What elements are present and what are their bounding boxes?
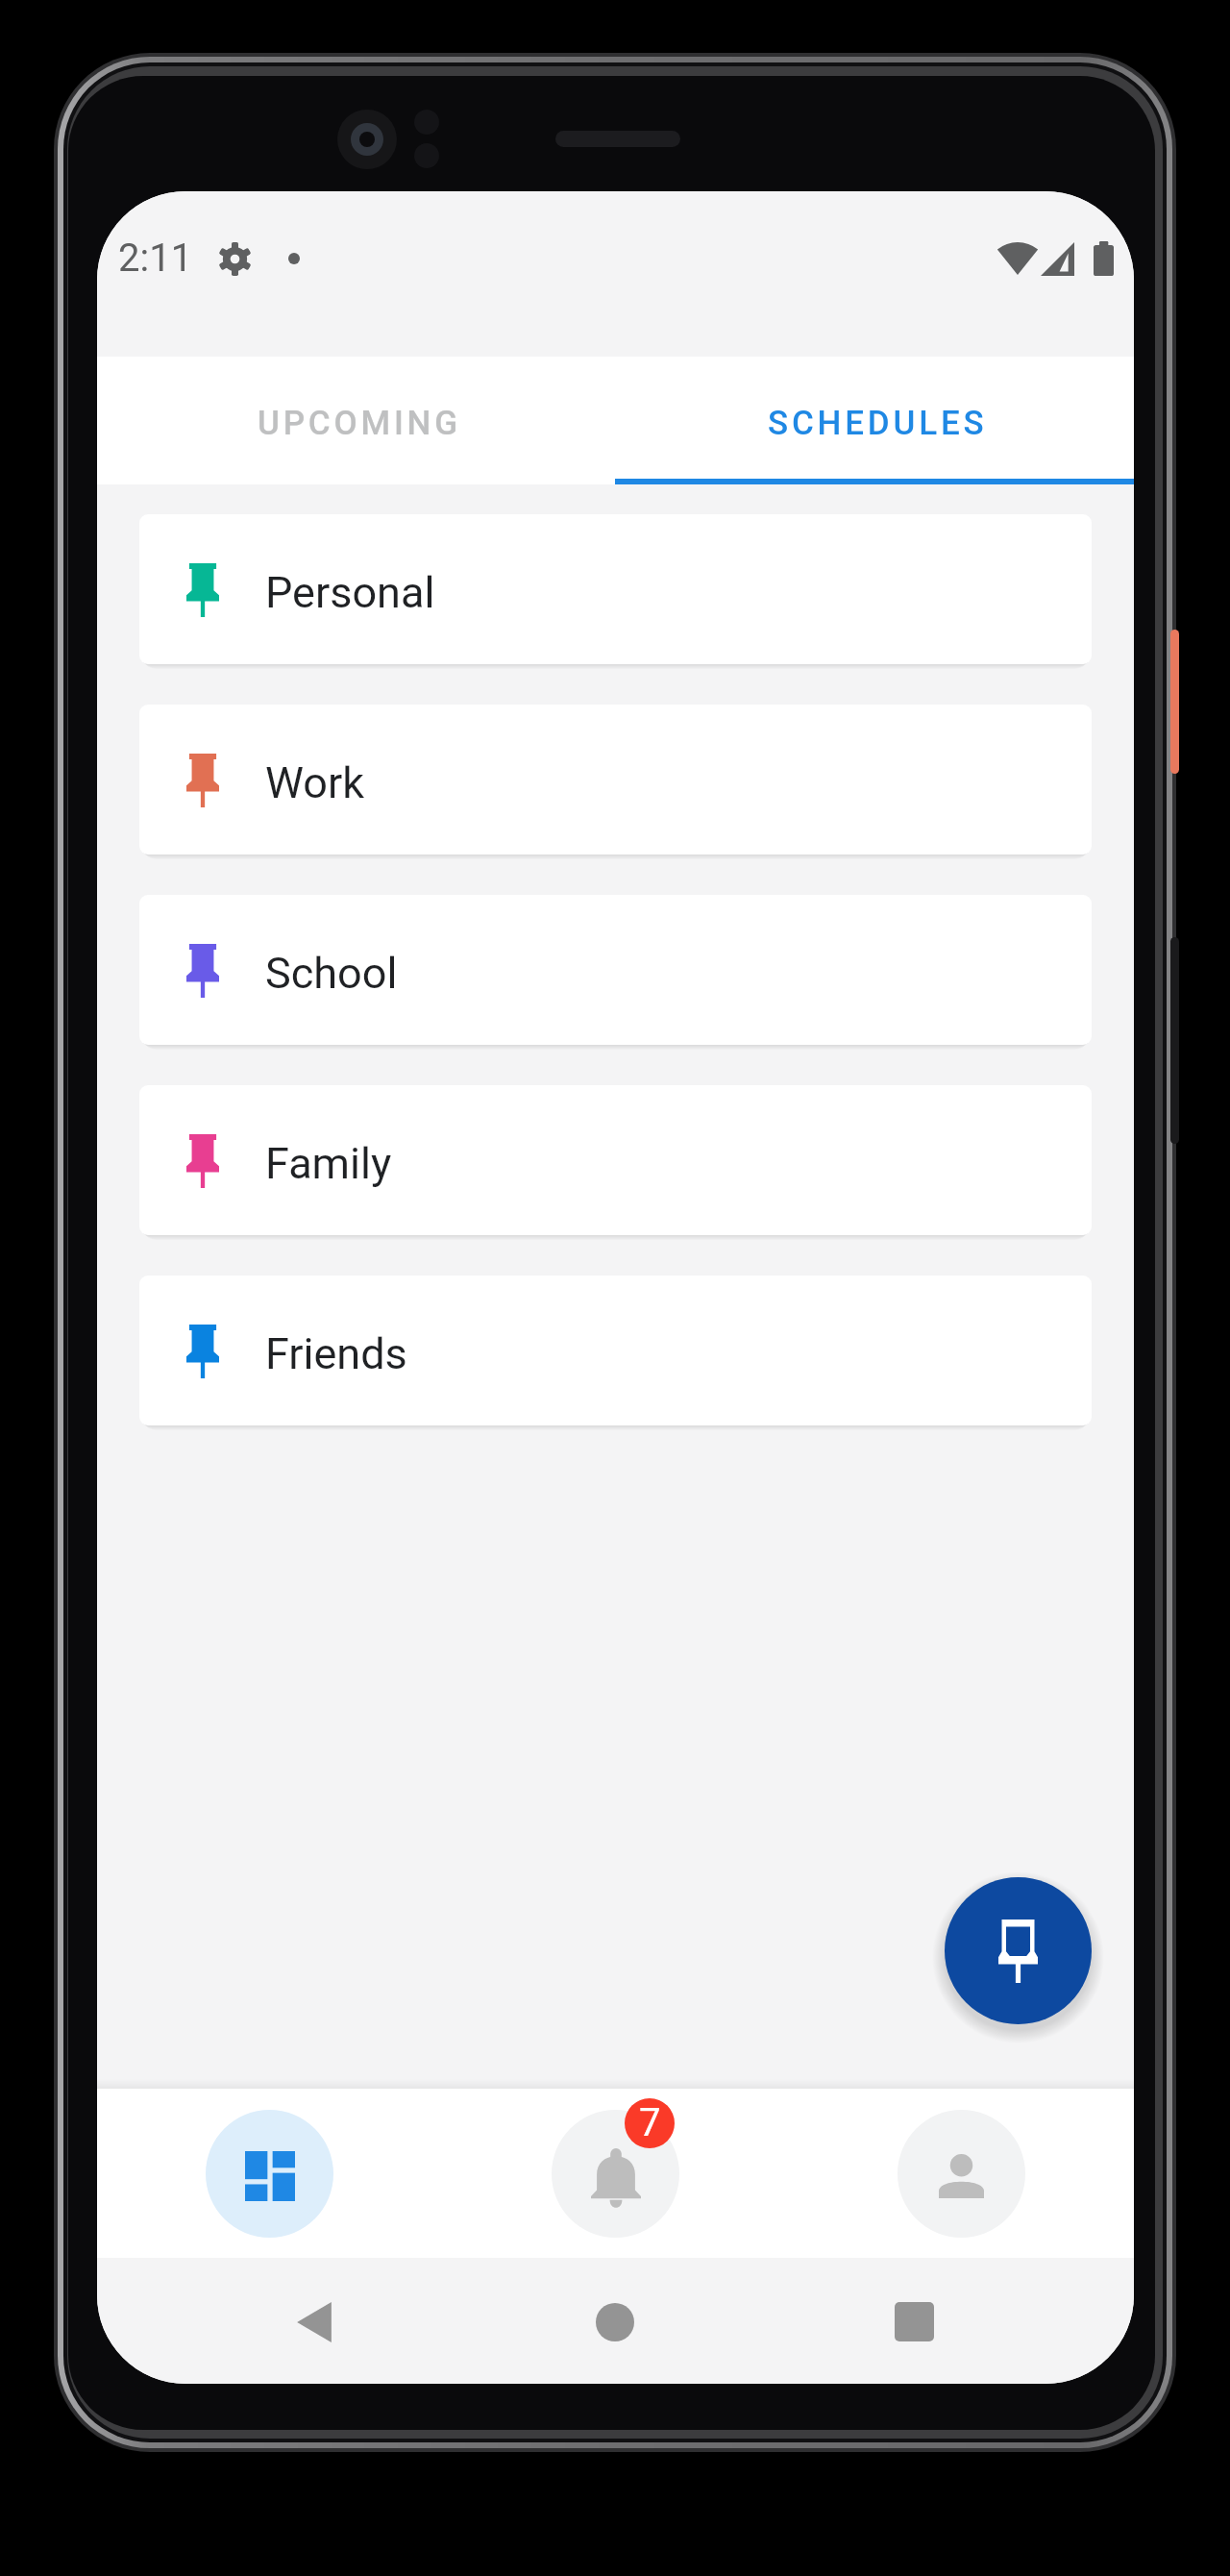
button[interactable]: Recent apps bbox=[788, 2258, 1134, 2384]
button[interactable]: School bbox=[139, 895, 1092, 1045]
button[interactable]: Add pin bbox=[945, 1877, 1092, 2024]
staticText: Work bbox=[265, 757, 364, 808]
staticText: Personal bbox=[265, 567, 435, 618]
button[interactable]: Home bbox=[442, 2258, 788, 2384]
staticText: Family bbox=[265, 1138, 392, 1189]
staticText: 7 bbox=[639, 2100, 661, 2145]
staticText: SCHEDULES bbox=[768, 404, 988, 443]
staticText: 2:11 bbox=[118, 235, 193, 281]
staticText: UPCOMING bbox=[258, 404, 461, 443]
button[interactable]: Notifications, 7 new bbox=[442, 2089, 788, 2258]
button[interactable]: Back bbox=[97, 2258, 442, 2384]
button[interactable]: UPCOMING bbox=[97, 357, 615, 484]
button[interactable]: Friends bbox=[139, 1276, 1092, 1425]
button[interactable]: Personal bbox=[139, 514, 1092, 664]
staticText: Friends bbox=[265, 1328, 407, 1379]
button[interactable]: Work bbox=[139, 705, 1092, 855]
button[interactable]: Dashboard bbox=[97, 2089, 442, 2258]
button[interactable]: Profile bbox=[788, 2089, 1134, 2258]
button[interactable]: SCHEDULES bbox=[615, 357, 1134, 484]
button[interactable]: Family bbox=[139, 1085, 1092, 1235]
staticText: School bbox=[265, 948, 398, 999]
